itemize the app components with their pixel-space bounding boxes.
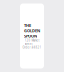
staticText: Order #4821 bbox=[22, 46, 41, 49]
staticText: THE GOLDEN SPOON bbox=[24, 23, 40, 39]
staticText: 120 Market Street bbox=[24, 39, 39, 46]
